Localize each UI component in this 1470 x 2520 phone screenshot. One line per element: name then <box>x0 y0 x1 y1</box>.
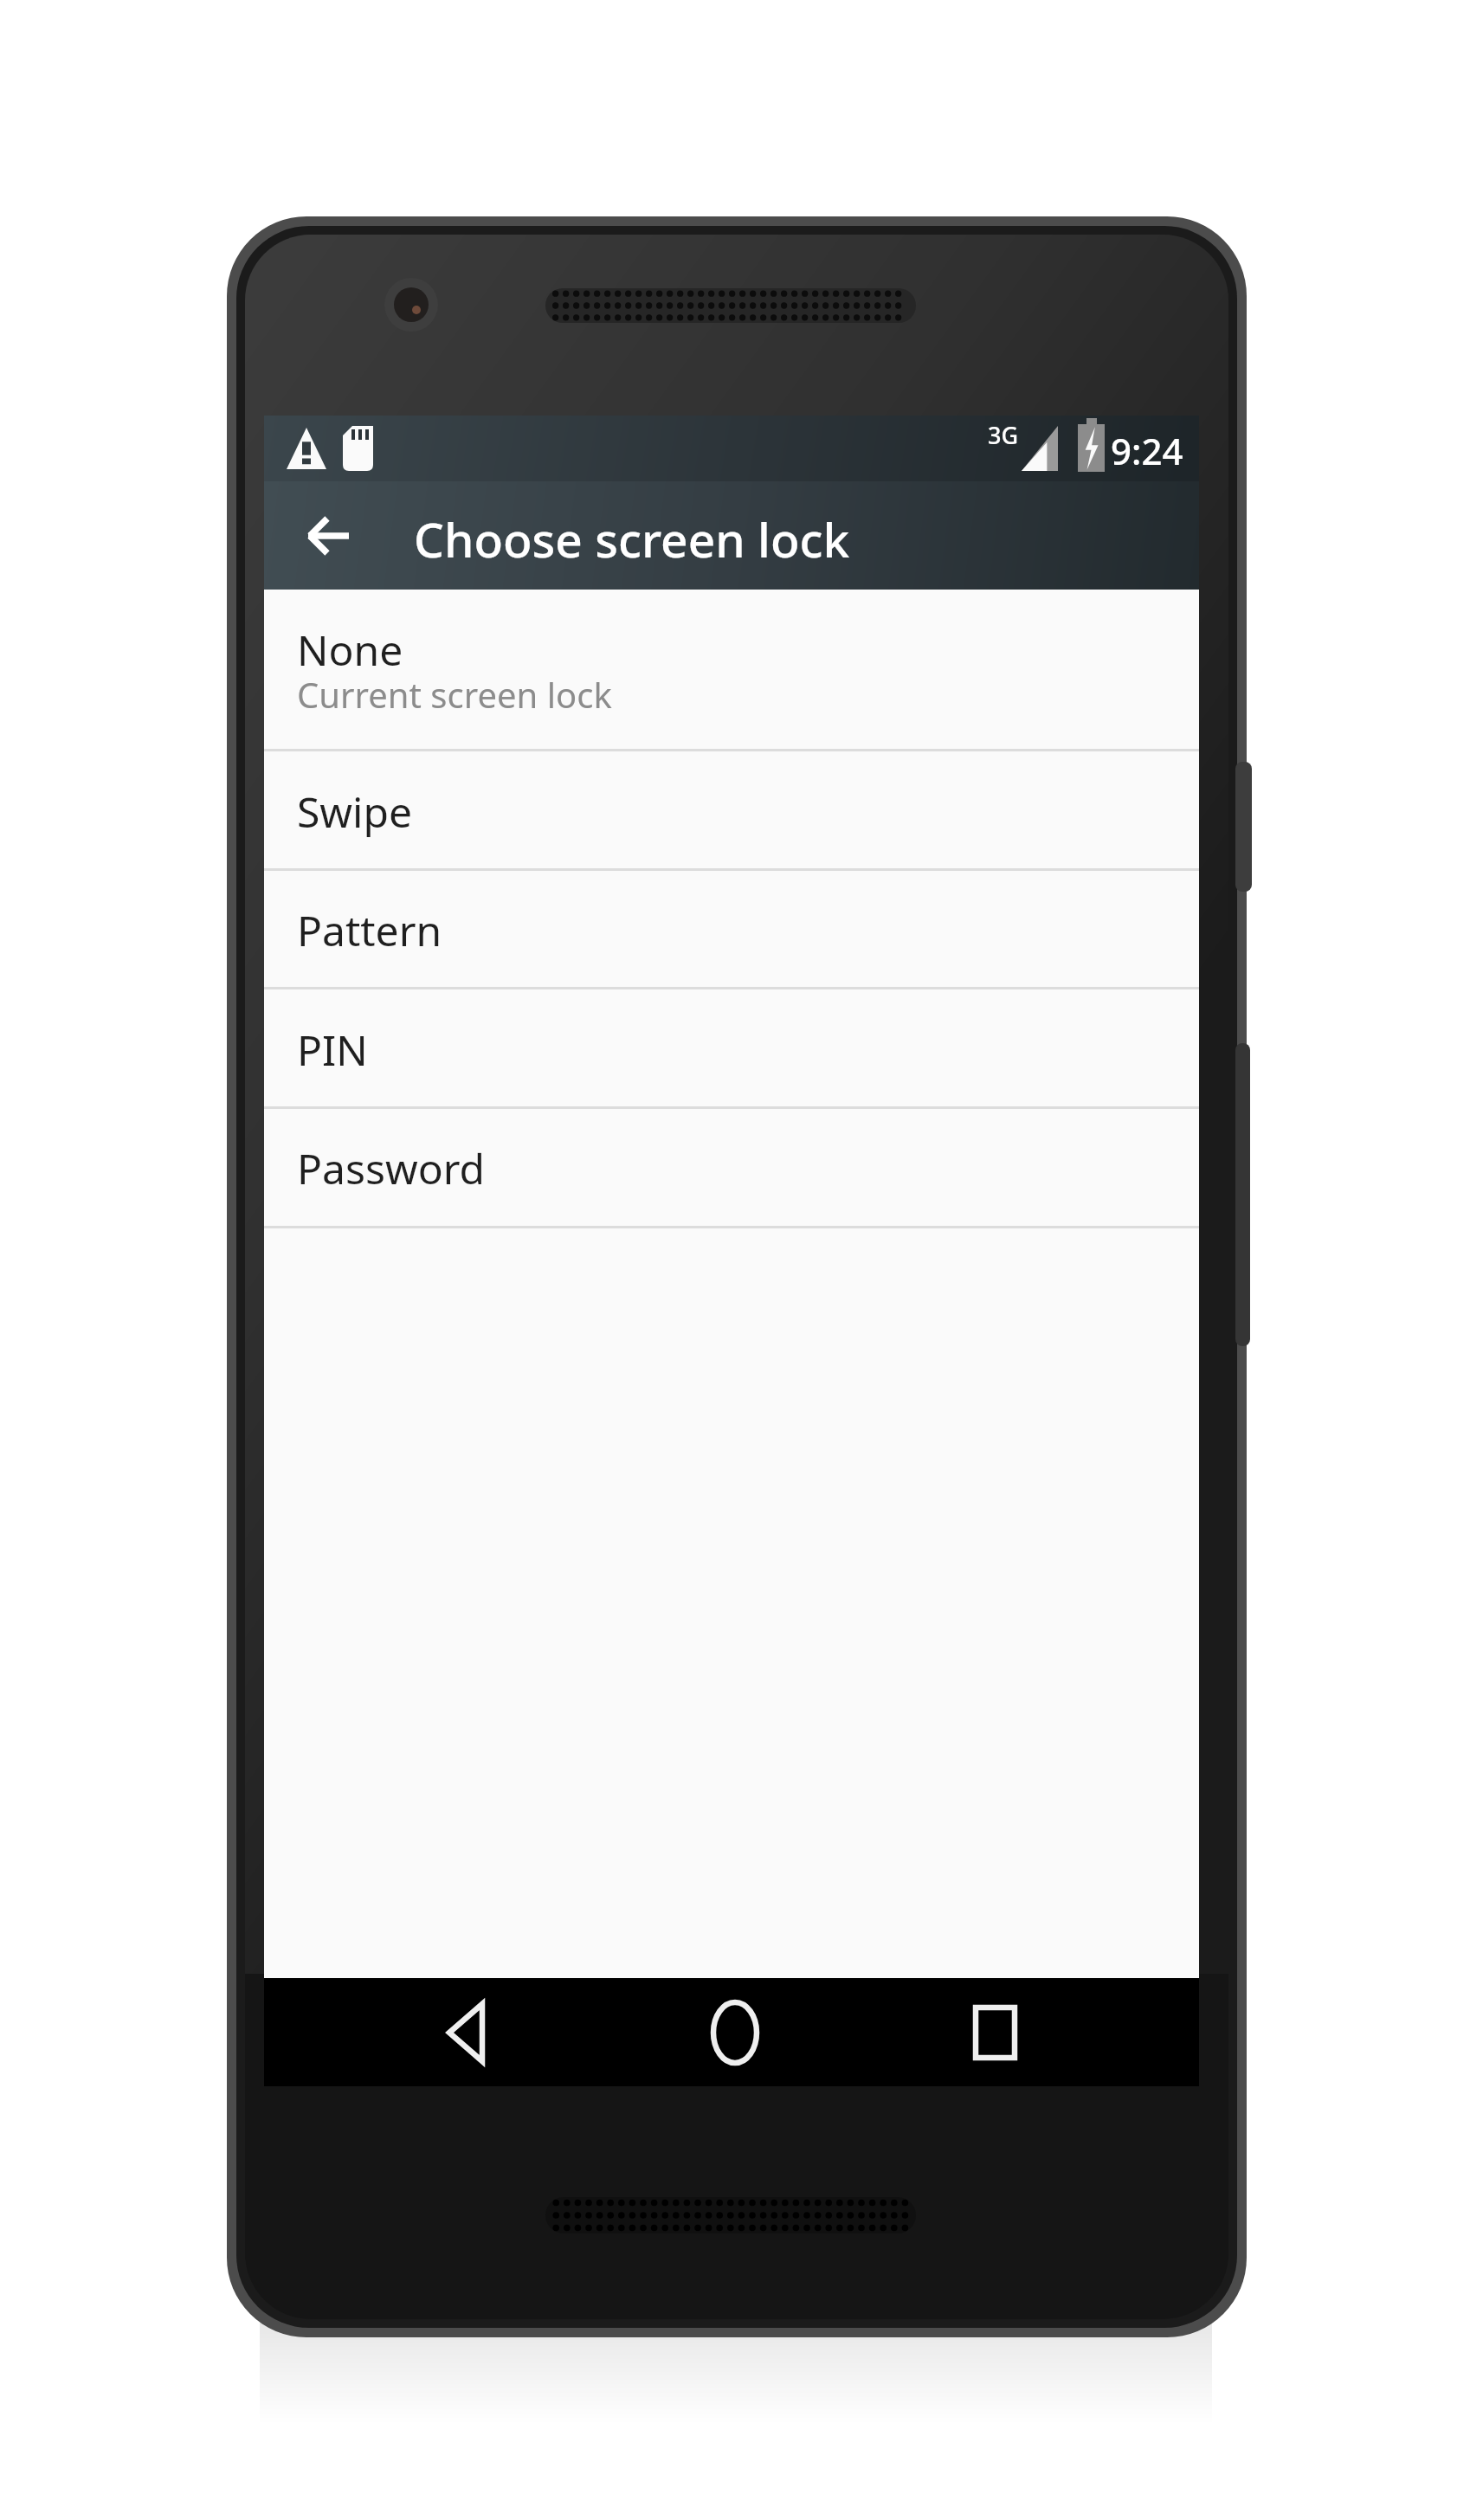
staticText: 3G <box>988 419 1019 451</box>
button[interactable] <box>264 750 1199 868</box>
button[interactable] <box>264 869 1199 987</box>
staticText: Password <box>297 1140 486 1196</box>
button[interactable]: Recent apps <box>900 1978 1091 2086</box>
staticText: Current screen lock <box>297 671 612 718</box>
staticText: Choose screen lock <box>414 506 850 571</box>
staticText: PIN <box>297 1022 368 1078</box>
staticText: Swipe <box>297 783 413 840</box>
button[interactable] <box>264 988 1199 1106</box>
staticText: None <box>297 622 403 678</box>
button[interactable] <box>264 1107 1199 1226</box>
button[interactable]: Back <box>273 483 398 590</box>
staticText: Pattern <box>297 902 442 958</box>
button[interactable]: Back <box>372 1978 563 2086</box>
staticText: 9:24 <box>1111 426 1183 475</box>
button[interactable] <box>264 590 1199 749</box>
button[interactable]: Home <box>636 1978 827 2086</box>
